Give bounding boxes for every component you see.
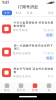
staticText: 全部 — [4, 11, 10, 14]
staticText: 更多 — [48, 11, 54, 14]
staticText: 新一代旗舰手机发布会定档下周三 — [14, 44, 53, 51]
staticText: 本地生活资讯 — [13, 75, 31, 78]
button[interactable]: 微信 — [0, 82, 14, 93]
button[interactable]: 未读 — [14, 10, 23, 15]
staticText: ◗ — [53, 1, 54, 4]
staticText: 周末天气转晴 适合外出郊游踏青 — [13, 67, 53, 74]
button[interactable]: 我 — [42, 82, 56, 93]
staticText: 微信 — [4, 89, 10, 92]
staticText: 通讯录 — [16, 89, 25, 92]
button[interactable]: 新一代旗舰手机发布会定档下周三 — [0, 41, 56, 62]
staticText: 查看 — [47, 56, 53, 60]
button[interactable]: 通讯录 — [14, 82, 28, 93]
button[interactable]: 常读 — [25, 10, 34, 15]
button[interactable]: 今日大盘震荡收涨 科技龙头股集体领涨 — [0, 17, 56, 41]
staticText: 订阅号消息 — [18, 4, 38, 9]
staticText: 我 — [47, 89, 50, 92]
staticText: 昨天 — [48, 75, 54, 78]
staticText: ▁▃▅ — [46, 1, 52, 4]
staticText: 数码前沿观察 — [13, 52, 31, 55]
staticText: 今日大盘震荡收涨 科技龙头股集体领涨 — [13, 21, 53, 27]
staticText: 1小时前 — [43, 51, 54, 55]
staticText: 未读 — [16, 11, 22, 14]
button[interactable]: 周末天气转晴 适合外出郊游踏青 — [0, 63, 56, 82]
staticText: 3分钟前 — [43, 28, 54, 32]
staticText: 发现 — [32, 89, 38, 92]
staticText: 常读 — [27, 11, 33, 14]
button[interactable]: 全部 — [2, 10, 12, 15]
staticText: 财经早知道 — [13, 28, 28, 32]
button[interactable]: 更多 — [48, 11, 54, 14]
staticText: 9:41 — [2, 0, 9, 5]
button[interactable]: 发现 — [28, 82, 42, 93]
staticText: 查看 — [47, 33, 53, 37]
